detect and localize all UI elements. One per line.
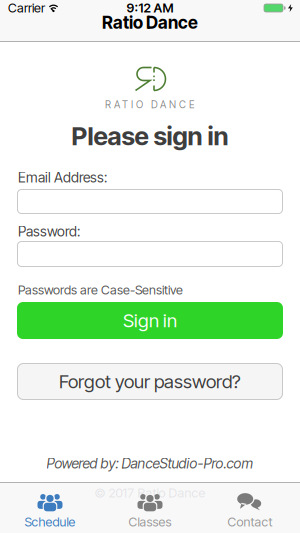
staticText: Contact	[227, 514, 272, 530]
staticText: Please sign in	[71, 121, 228, 151]
staticText: Schedule	[24, 514, 75, 530]
button[interactable]: Contact	[200, 486, 300, 530]
staticText: Carrier	[8, 0, 45, 16]
staticText: Sign in	[123, 309, 177, 332]
staticText: Ratio Dance	[102, 12, 198, 33]
button[interactable]: Classes	[100, 486, 200, 530]
staticText: Email Address:	[18, 169, 107, 186]
staticText: © 2017 Ratio Dance	[94, 485, 205, 501]
staticText: RATIO DANCE	[105, 98, 195, 111]
button[interactable]: Powered by: DanceStudio-Pro.com	[46, 457, 253, 470]
button[interactable]: Forgot your password?	[0, 363, 300, 400]
button[interactable]: Schedule	[0, 486, 100, 530]
staticText: Powered by: DanceStudio-Pro.com	[46, 455, 253, 472]
button[interactable]: Sign in	[0, 302, 300, 339]
staticText: Forgot your password?	[59, 370, 241, 393]
staticText: Passwords are Case-Sensitive	[18, 282, 183, 298]
staticText: Classes	[128, 514, 171, 530]
staticText: 9:12 AM	[126, 0, 173, 16]
staticText: Password:	[18, 223, 80, 240]
